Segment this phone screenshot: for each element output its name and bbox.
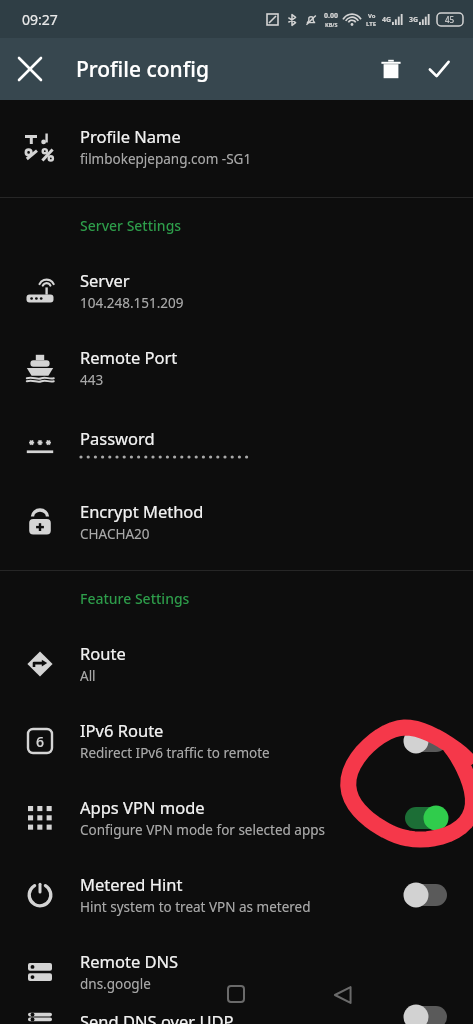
button[interactable]	[401, 801, 451, 835]
staticText: Redirect IPv6 traffic to remote	[80, 744, 270, 762]
staticText: Profile Name	[80, 125, 181, 147]
staticText: IPv6 Route	[80, 719, 164, 741]
button[interactable]: Server	[0, 252, 473, 329]
button[interactable]	[401, 724, 451, 758]
staticText: Password	[80, 427, 155, 449]
button[interactable]: 6	[0, 702, 473, 779]
staticText: Remote Port	[80, 346, 178, 368]
staticText: Configure VPN mode for selected apps	[80, 821, 325, 839]
staticText: 09:27	[22, 10, 58, 29]
staticText: Vo	[368, 12, 376, 20]
button[interactable]: Delete	[367, 45, 415, 93]
staticText: Hint system to treat VPN as metered	[80, 898, 311, 916]
button[interactable]: Password	[0, 406, 473, 483]
staticText: 443	[80, 371, 104, 389]
button[interactable]: Remote Port	[0, 329, 473, 406]
staticText: Metered Hint	[80, 873, 183, 895]
button[interactable]: Apps VPN mode	[0, 779, 473, 856]
staticText: 45	[445, 14, 455, 25]
staticText: CHACHA20	[80, 525, 150, 543]
staticText: Server Settings	[80, 216, 182, 235]
staticText: Feature Settings	[80, 589, 190, 608]
staticText: KB/S	[325, 21, 338, 28]
staticText: 6	[36, 732, 45, 751]
staticText: Remote DNS	[80, 950, 179, 972]
staticText: 3G	[409, 15, 419, 25]
button[interactable]: Metered Hint	[0, 856, 473, 933]
staticText: 0.00	[324, 11, 338, 21]
staticText: Send DNS over UDP	[80, 1010, 234, 1024]
button[interactable]: Route	[0, 625, 473, 702]
staticText: LTE	[366, 20, 377, 28]
button[interactable]	[401, 878, 451, 912]
staticText: 4G	[382, 15, 392, 25]
staticText: Apps VPN mode	[80, 796, 205, 818]
button[interactable]: Save	[415, 45, 463, 93]
button[interactable]: Close	[6, 45, 54, 93]
button[interactable]: Encrypt Method	[0, 483, 473, 560]
staticText: Encrypt Method	[80, 500, 204, 522]
button[interactable]: Profile Name	[0, 108, 473, 185]
button[interactable]: Send DNS over UDP	[0, 1010, 473, 1024]
button[interactable]: Remote DNS	[0, 933, 473, 1010]
staticText: 104.248.151.209	[80, 294, 184, 312]
button[interactable]	[401, 1010, 451, 1024]
staticText: Profile config	[76, 55, 209, 84]
staticText: dns.google	[80, 975, 151, 993]
staticText: Route	[80, 642, 126, 664]
staticText: Server	[80, 269, 130, 291]
staticText: filmbokepjepang.com -SG1	[80, 150, 252, 168]
staticText: All	[80, 667, 96, 685]
